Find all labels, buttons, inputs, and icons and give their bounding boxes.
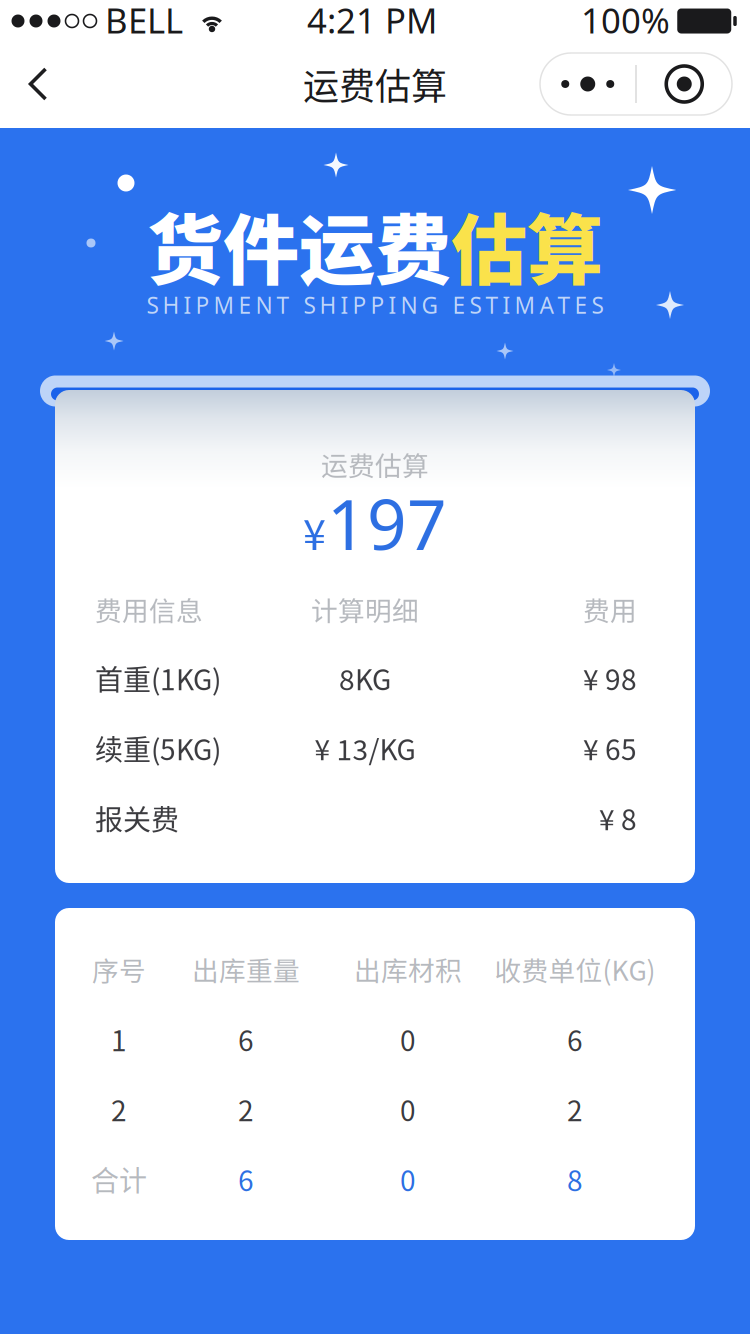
staticText: 出库材积 <box>354 950 462 988</box>
staticText: 100% <box>581 0 670 43</box>
staticText: 197 <box>327 477 447 569</box>
staticText: 8KG <box>339 658 391 698</box>
staticText: 8 <box>567 1159 583 1199</box>
staticText: 续重(5KG) <box>95 728 221 768</box>
staticText: 0 <box>400 1019 416 1059</box>
staticText: 1 <box>111 1019 127 1059</box>
staticText: 0 <box>400 1159 416 1199</box>
staticText: 运费估算 <box>321 445 429 483</box>
button[interactable]: Back <box>0 40 76 128</box>
staticText: 首重(1KG) <box>95 658 221 698</box>
staticText: 费用信息 <box>95 590 203 628</box>
staticText: ¥ 13/KG <box>314 728 415 768</box>
staticText: 出库重量 <box>192 950 300 988</box>
staticText: ¥ <box>303 502 326 562</box>
staticText: 0 <box>400 1089 416 1129</box>
staticText: 序号 <box>92 950 146 988</box>
staticText: 货件运费 <box>147 190 451 300</box>
staticText: 2 <box>238 1089 254 1129</box>
staticText: 运费估算 <box>303 58 447 110</box>
staticText: 6 <box>238 1019 254 1059</box>
staticText: 估算 <box>451 190 603 300</box>
staticText: 2 <box>567 1089 583 1129</box>
staticText: BELL <box>105 0 183 43</box>
staticText: S H I P M E N T S H I P P I N G E S T I … <box>146 290 603 320</box>
staticText: 4:21 PM <box>307 0 437 43</box>
staticText: ¥ 8 <box>599 798 637 838</box>
staticText: 6 <box>567 1019 583 1059</box>
staticText: 收费单位(KG) <box>494 950 655 988</box>
staticText: ¥ 98 <box>583 658 637 698</box>
staticText: 2 <box>111 1089 127 1129</box>
staticText: 6 <box>238 1159 254 1199</box>
staticText: 费用 <box>583 590 637 628</box>
button[interactable]: More options <box>540 53 732 115</box>
staticText: 报关费 <box>95 798 179 838</box>
staticText: 合计 <box>91 1159 147 1199</box>
staticText: 计算明细 <box>311 590 419 628</box>
staticText: ¥ 65 <box>583 728 637 768</box>
